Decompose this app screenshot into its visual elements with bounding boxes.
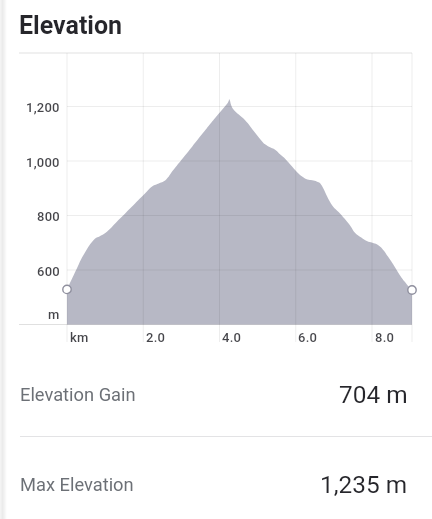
staticText: 1,000 xyxy=(26,155,60,170)
button[interactable]: Max Elevation xyxy=(0,437,432,519)
staticText: Elevation xyxy=(19,11,123,40)
staticText: 4.0 xyxy=(222,330,242,345)
staticText: km xyxy=(70,330,89,345)
staticText: 8.0 xyxy=(375,330,395,345)
staticText: 6.0 xyxy=(298,330,318,345)
staticText: 704 m xyxy=(339,380,408,409)
button[interactable]: Elevation Gain xyxy=(0,353,432,436)
staticText: 1,200 xyxy=(26,100,60,115)
staticText: 2.0 xyxy=(146,330,166,345)
staticText: 600 xyxy=(37,264,60,279)
staticText: Elevation Gain xyxy=(20,384,136,405)
staticText: 1,235 m xyxy=(320,470,408,499)
staticText: 800 xyxy=(37,209,60,224)
staticText: m xyxy=(48,307,60,322)
staticText: Max Elevation xyxy=(20,474,134,495)
